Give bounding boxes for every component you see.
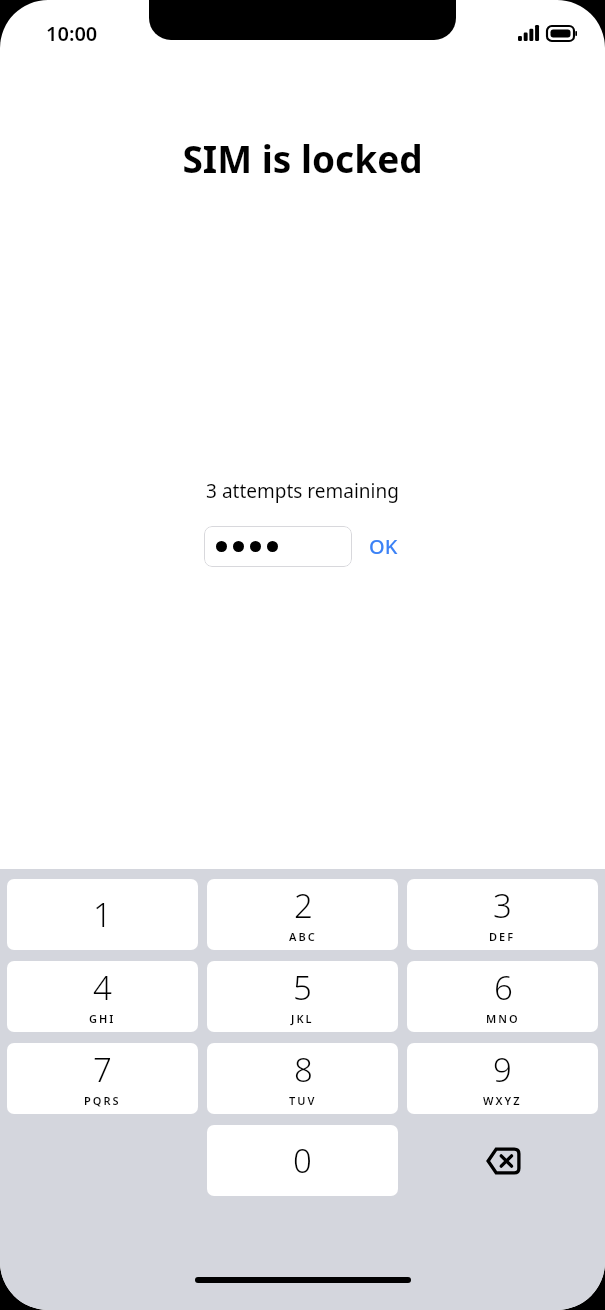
staticText: OK [369, 533, 398, 560]
staticText: 10:00 [46, 20, 98, 47]
button[interactable]: OK [365, 527, 402, 566]
button[interactable]: 6 [407, 961, 598, 1032]
button[interactable]: 3 [407, 879, 598, 950]
staticText: 7 [93, 1047, 112, 1092]
button[interactable]: 4 [7, 961, 198, 1032]
button[interactable]: 0 [207, 1125, 398, 1196]
button[interactable]: 1 [7, 879, 198, 950]
staticText: 0 [293, 1138, 312, 1183]
staticText: 1 [93, 892, 112, 937]
button[interactable]: 8 [207, 1043, 398, 1114]
staticText: 3 [493, 883, 512, 928]
staticText: 5 [293, 965, 312, 1010]
staticText: WXYZ [483, 1093, 522, 1108]
staticText: 6 [494, 965, 513, 1010]
staticText: TUV [289, 1093, 317, 1108]
staticText: DEF [489, 929, 516, 944]
staticText: 3 attempts remaining [206, 478, 399, 504]
button[interactable]: 5 [207, 961, 398, 1032]
staticText: GHI [89, 1011, 116, 1026]
button[interactable]: 9 [407, 1043, 598, 1114]
staticText: ABC [289, 929, 317, 944]
button[interactable]: 2 [207, 879, 398, 950]
staticText: MNO [486, 1011, 520, 1026]
staticText: 9 [493, 1047, 512, 1092]
button[interactable]: 7 [7, 1043, 198, 1114]
staticText: SIM is locked [182, 133, 423, 183]
button[interactable] [204, 526, 352, 567]
staticText: 4 [93, 965, 112, 1010]
staticText: JKL [291, 1011, 314, 1026]
staticText: PQRS [84, 1093, 121, 1108]
button[interactable]: Delete [407, 1125, 598, 1196]
staticText: 8 [294, 1047, 313, 1092]
staticText: 2 [294, 883, 313, 928]
